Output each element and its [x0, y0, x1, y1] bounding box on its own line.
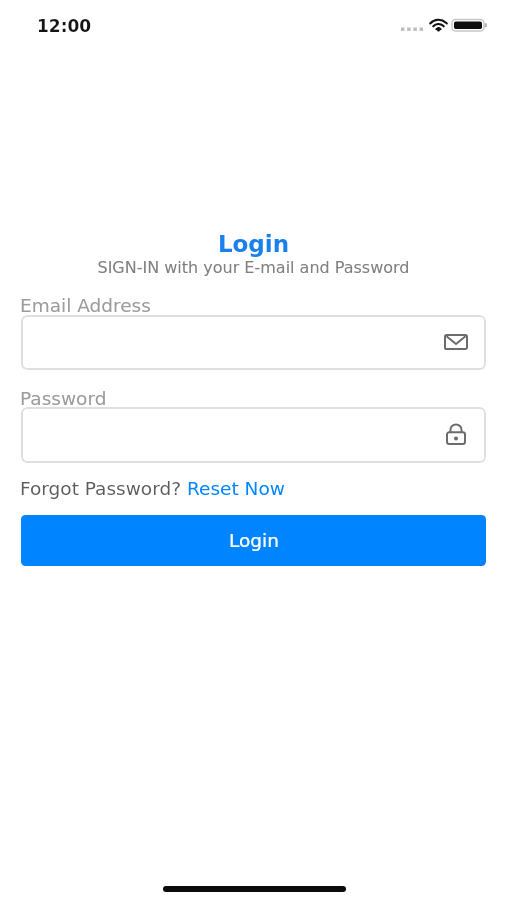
staticText: Forgot Password? [20, 478, 187, 500]
staticText: 12:00 [37, 16, 92, 36]
button[interactable]: Login [21, 515, 486, 566]
staticText: SIGN-IN with your E-mail and Password [0, 258, 507, 277]
button[interactable]: Password [21, 407, 486, 463]
other: Email [444, 334, 468, 350]
staticText: Email Address [20, 295, 151, 317]
staticText: Password [20, 388, 107, 410]
staticText: Login [229, 530, 279, 552]
button[interactable]: Reset Now [187, 478, 285, 500]
button[interactable]: Email [21, 315, 486, 370]
staticText: Login [0, 231, 507, 258]
other: Password [446, 424, 466, 445]
